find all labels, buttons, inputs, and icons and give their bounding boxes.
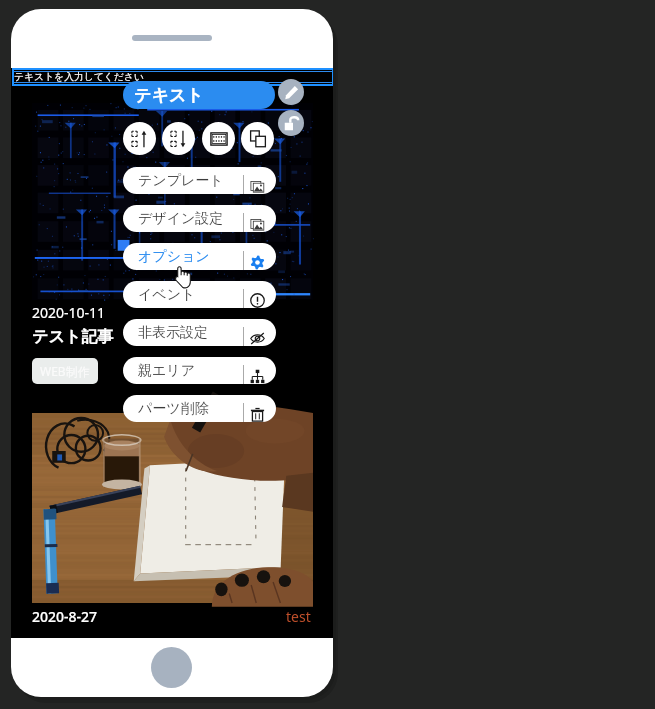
button[interactable]: 非表示設定 — [123, 319, 276, 346]
button[interactable]: オプション — [123, 243, 276, 270]
staticText: オプション — [138, 248, 210, 266]
staticText: 2020-8-27 — [32, 607, 98, 626]
button[interactable]: Home — [151, 647, 192, 688]
button[interactable]: Unlock — [278, 110, 304, 136]
button[interactable]: Article photo: backlit keyboard — [32, 103, 313, 300]
staticText: test — [286, 607, 311, 626]
button[interactable]: デザイン設定 — [123, 205, 276, 232]
staticText: 親エリア — [138, 362, 195, 380]
button[interactable]: Copy — [241, 122, 274, 155]
button[interactable]: Edit — [278, 79, 304, 105]
button[interactable]: Move down — [162, 122, 195, 155]
staticText: デザイン設定 — [138, 210, 224, 228]
staticText: WEB制作 — [40, 363, 90, 379]
staticText: 2020-10-11 — [32, 303, 106, 322]
button[interactable]: 親エリア — [123, 357, 276, 384]
button[interactable]: テキスト — [123, 81, 275, 109]
staticText: テスト記事 — [32, 327, 114, 347]
button[interactable]: パーツ削除 — [123, 395, 276, 422]
button[interactable]: Move up — [123, 122, 156, 155]
staticText: イベント — [138, 286, 196, 304]
button[interactable]: test — [286, 607, 311, 626]
staticText: 非表示設定 — [138, 324, 208, 342]
staticText: パーツ削除 — [138, 400, 209, 418]
button[interactable]: テンプレート — [123, 167, 276, 194]
staticText: テキスト — [134, 85, 204, 106]
button[interactable]: イベント — [123, 281, 276, 308]
staticText: テンプレート — [138, 172, 224, 190]
staticText: テキストを入力してください — [14, 71, 144, 83]
button[interactable]: Article photo: sketching on a notepad — [32, 413, 313, 603]
button[interactable]: WEB制作 — [32, 358, 98, 384]
button[interactable]: テキストを入力してください — [12, 68, 333, 86]
button[interactable]: Keyboard — [202, 122, 235, 155]
